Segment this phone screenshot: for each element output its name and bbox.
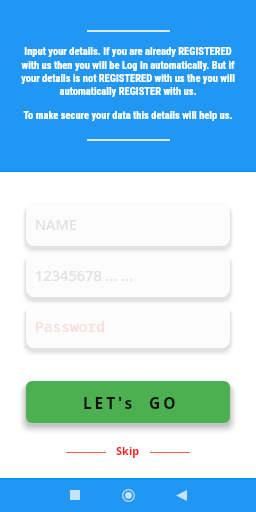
button[interactable]: NAME (26, 202, 230, 246)
staticText: 12345678 ... ... (35, 265, 133, 285)
staticText: LET's GO (83, 392, 179, 413)
staticText: Skip (116, 443, 140, 458)
staticText: NAME (35, 214, 77, 234)
staticText: Input your details. If you are already R… (21, 45, 235, 97)
button[interactable]: Password (26, 304, 230, 348)
button[interactable]: Back (166, 480, 196, 510)
button[interactable]: 12345678 ... ... (26, 253, 230, 297)
button[interactable]: LET's GO (26, 381, 230, 423)
staticText: Password (35, 316, 106, 336)
staticText: To make secure your data this details wi… (23, 109, 233, 121)
button[interactable]: Skip (0, 443, 256, 458)
button[interactable]: Home (113, 480, 143, 510)
button[interactable]: Recent apps (60, 480, 90, 510)
